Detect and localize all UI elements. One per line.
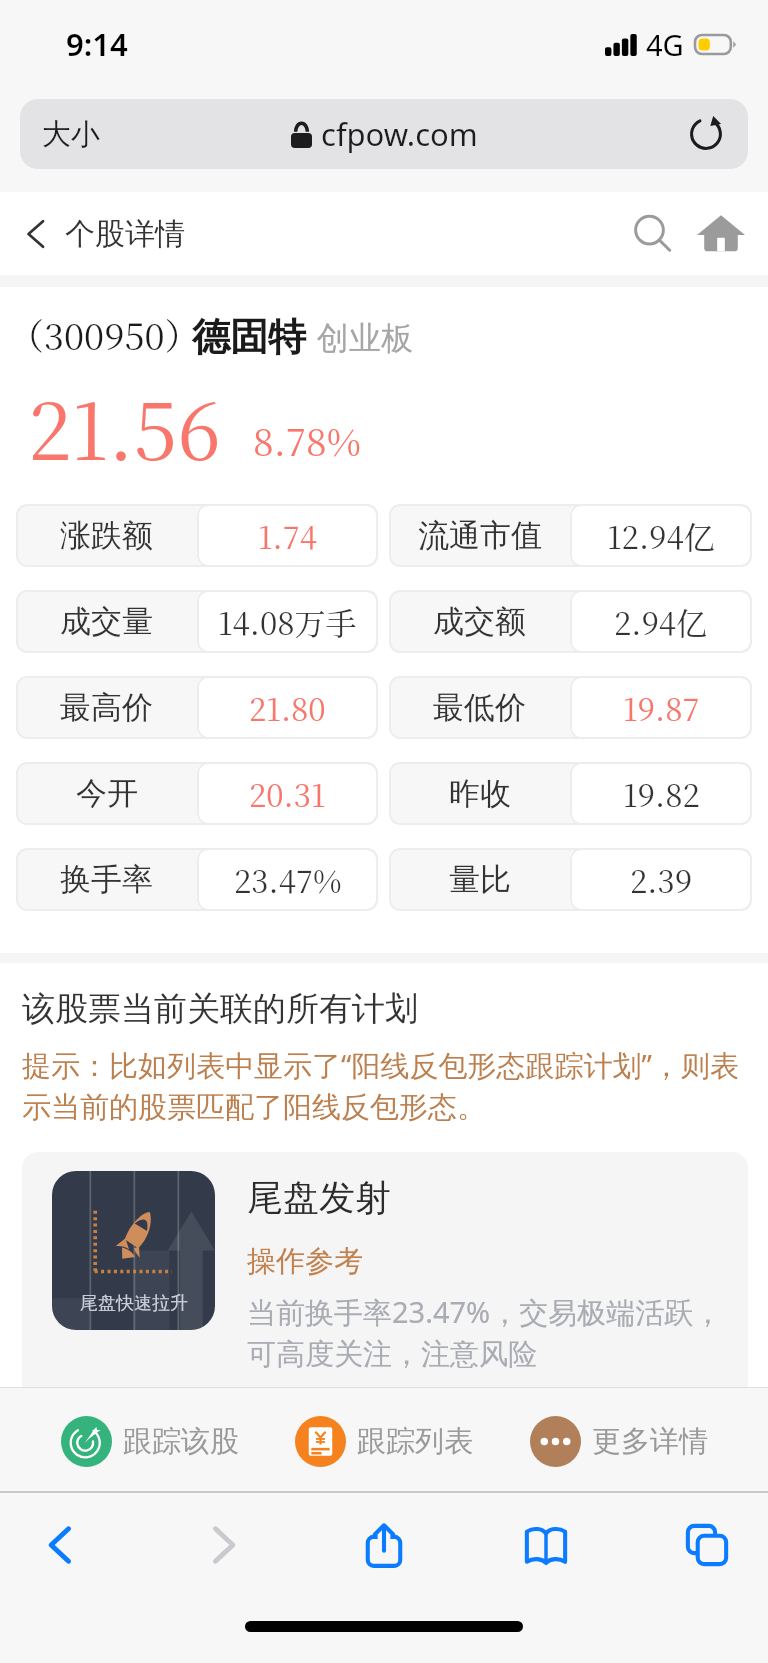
staticText: 成交量 <box>60 602 153 641</box>
button[interactable]: 最低价 <box>389 676 752 739</box>
staticText: 14.08万手 <box>218 599 357 644</box>
staticText: 德固特 <box>192 313 306 361</box>
staticText: 成交额 <box>433 602 526 641</box>
button[interactable]: 换手率 <box>16 848 378 911</box>
button[interactable]: 跟踪该股 <box>61 1392 295 1491</box>
button[interactable]: Home <box>692 205 750 263</box>
staticText: 最高价 <box>60 688 153 727</box>
staticText: 个股详情 <box>65 215 185 253</box>
staticText: 跟踪该股 <box>123 1423 239 1460</box>
staticText: 4G <box>646 25 684 64</box>
button[interactable]: 涨跌额 <box>16 504 378 567</box>
staticText: 9:14 <box>66 23 128 65</box>
button[interactable]: 成交量 <box>16 590 378 653</box>
staticText: 2.39 <box>630 857 693 902</box>
staticText: 跟踪列表 <box>357 1423 473 1460</box>
staticText: （300950） <box>8 309 201 361</box>
staticText: 1.74 <box>258 513 317 558</box>
button[interactable]: 大小 <box>20 99 748 169</box>
button[interactable]: Back <box>22 1506 100 1584</box>
button[interactable]: Bookmarks <box>507 1506 585 1584</box>
button[interactable]: 昨收 <box>389 762 752 825</box>
staticText: 该股票当前关联的所有计划 <box>22 988 418 1030</box>
staticText: 创业板 <box>317 318 413 358</box>
staticText: 最低价 <box>433 688 526 727</box>
button[interactable]: 尾盘快速拉升 <box>22 1152 748 1398</box>
staticText: 23.47% <box>234 857 342 902</box>
button[interactable]: 今开 <box>16 762 378 825</box>
staticText: 换手率 <box>60 860 153 899</box>
button[interactable]: 量比 <box>389 848 752 911</box>
staticText: 流通市值 <box>418 516 542 555</box>
button[interactable]: Search <box>624 205 682 263</box>
button[interactable]: Forward <box>184 1506 262 1584</box>
button[interactable]: 个股详情 <box>14 212 185 256</box>
staticText: 当前换手率23.47%，交易极端活跃， 可高度关注，注意风险 <box>247 1292 723 1372</box>
staticText: 2.94亿 <box>614 599 708 644</box>
staticText: 19.87 <box>623 685 700 730</box>
button[interactable]: 最高价 <box>16 676 378 739</box>
button[interactable]: 跟踪列表 <box>295 1392 530 1491</box>
staticText: 更多详情 <box>592 1423 708 1460</box>
staticText: 量比 <box>449 860 511 899</box>
staticText: 21.80 <box>249 685 326 730</box>
staticText: 12.94亿 <box>607 513 715 558</box>
button[interactable]: Reload <box>682 110 730 158</box>
staticText: 大小 <box>42 116 100 153</box>
staticText: 20.31 <box>249 771 326 816</box>
staticText: 尾盘发射 <box>247 1175 391 1220</box>
staticText: 8.78% <box>253 413 361 466</box>
button[interactable]: Tabs <box>668 1506 746 1584</box>
staticText: 操作参考 <box>247 1243 363 1280</box>
staticText: 涨跌额 <box>60 516 153 555</box>
button[interactable]: 流通市值 <box>389 504 752 567</box>
staticText: 19.82 <box>623 771 700 816</box>
staticText: 今开 <box>76 774 138 813</box>
staticText: 21.56 <box>28 370 221 482</box>
staticText: 昨收 <box>449 774 511 813</box>
staticText: 尾盘快速拉升 <box>80 1292 188 1315</box>
button[interactable]: 更多详情 <box>530 1392 765 1491</box>
button[interactable]: Share <box>345 1506 423 1584</box>
staticText: cfpow.com <box>321 113 478 155</box>
button[interactable]: 成交额 <box>389 590 752 653</box>
staticText: 提示：比如列表中显示了“阳线反包形态跟踪计划”，则表 示当前的股票匹配了阳线反包… <box>22 1045 768 1125</box>
